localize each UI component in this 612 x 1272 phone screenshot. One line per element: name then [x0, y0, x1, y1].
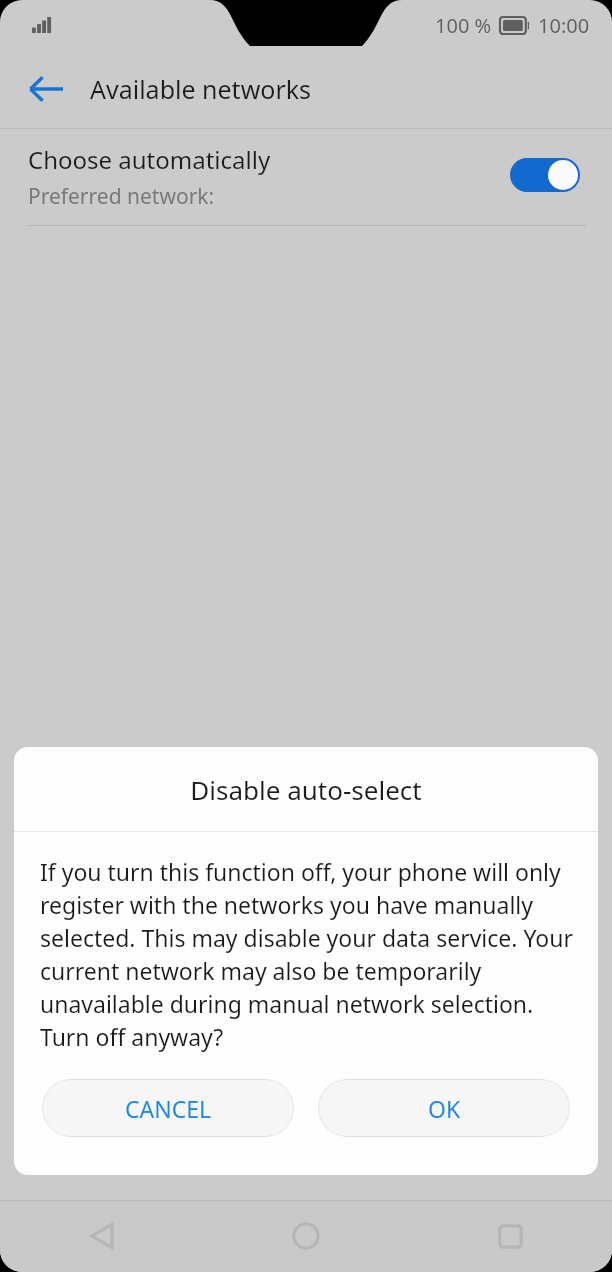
button[interactable]: Back: [0, 1200, 204, 1272]
staticText: Disable auto-select: [190, 772, 422, 807]
button[interactable]: OK: [318, 1079, 570, 1137]
button[interactable]: CANCEL: [42, 1079, 294, 1137]
staticText: 10:00: [538, 12, 590, 39]
button[interactable]: Recent apps: [408, 1200, 612, 1272]
staticText: 100 %: [435, 12, 492, 39]
staticText: If you turn this function off, your phon…: [40, 856, 576, 1053]
staticText: Preferred network:: [28, 182, 215, 211]
staticText: OK: [428, 1093, 461, 1124]
staticText: CANCEL: [125, 1093, 212, 1124]
button[interactable]: Choose automatically toggle: [510, 158, 580, 192]
staticText: Choose automatically: [28, 143, 271, 176]
button[interactable]: Choose automatically: [0, 129, 612, 225]
staticText: Available networks: [90, 72, 312, 106]
button[interactable]: Back: [18, 61, 74, 117]
